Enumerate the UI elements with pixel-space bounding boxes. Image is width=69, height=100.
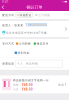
button[interactable]: 返回 xyxy=(0,3,6,11)
staticText: 货到付款 xyxy=(18,51,30,54)
staticText: 配送方式 xyxy=(2,13,14,17)
staticText: 个人 商品明细 xyxy=(17,62,53,65)
staticText: 数量 xyxy=(58,83,64,86)
staticText: 1 xyxy=(65,83,67,87)
staticText: 公司转账 xyxy=(19,42,31,45)
staticText: ¥48.00 xyxy=(22,88,33,91)
button[interactable]: 上门自提 xyxy=(34,13,51,17)
staticText: 上门自提 xyxy=(38,13,50,17)
staticText: 单价： xyxy=(13,83,22,86)
button[interactable]: 公司转账 xyxy=(16,42,31,45)
button[interactable]: 微信支付 xyxy=(34,42,49,45)
staticText: 小计： xyxy=(13,88,22,91)
staticText: 4G xyxy=(62,1,64,3)
staticText: 支付方式 xyxy=(2,42,14,45)
staticText: 北京市海淀区中关村大街1号楼 xyxy=(6,31,47,34)
button[interactable]: 货到付款 xyxy=(15,51,30,54)
staticText: 发票信息 xyxy=(2,62,14,65)
button[interactable]: 个人 商品明细 xyxy=(16,60,63,67)
staticText: 收货人：张某某 13800000000 xyxy=(2,23,47,27)
staticText: 快递配送 xyxy=(20,13,32,17)
staticText: 9:41 xyxy=(2,0,9,3)
staticText: 商品标题示例文字说明一行 xyxy=(13,79,49,82)
button[interactable]: 快递配送 xyxy=(16,13,33,17)
staticText: 微信支付 xyxy=(37,42,49,45)
staticText: 确认订单 xyxy=(26,5,42,10)
button[interactable]: 收货人：张某某 13800000000 xyxy=(0,21,69,37)
staticText: ¥48.00 xyxy=(22,83,33,87)
